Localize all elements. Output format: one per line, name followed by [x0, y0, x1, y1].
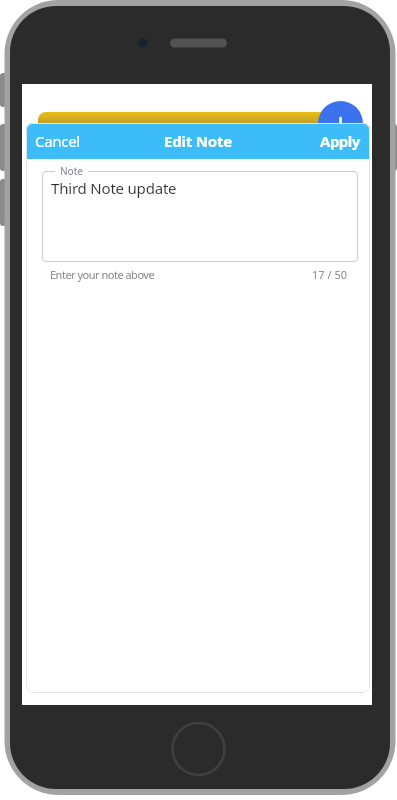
button[interactable]: Cancel	[26, 123, 88, 159]
button[interactable]: Apply	[312, 123, 370, 159]
staticText: 17 / 50	[312, 267, 347, 282]
staticText: Cancel	[35, 131, 80, 151]
staticText: Enter your note above	[50, 267, 155, 282]
staticText: Third Note update	[51, 178, 177, 198]
staticText: Note	[60, 164, 83, 178]
button[interactable]	[318, 101, 363, 146]
staticText: Apply	[320, 131, 360, 151]
staticText: Edit Note	[164, 131, 233, 151]
button[interactable]: Third Note update	[42, 171, 358, 262]
